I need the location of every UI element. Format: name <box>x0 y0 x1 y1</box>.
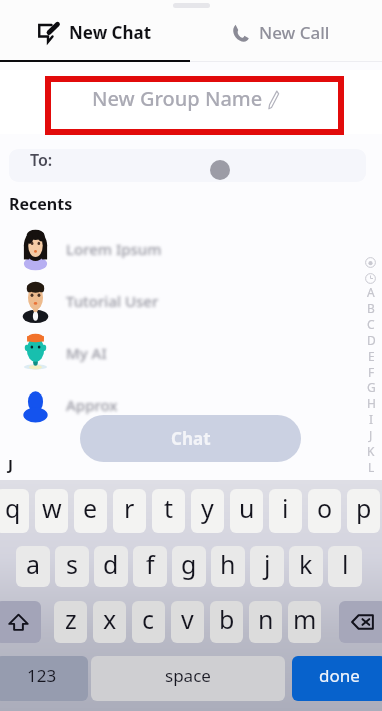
button[interactable]: New Group Name <box>0 70 382 134</box>
staticText: x <box>103 602 117 636</box>
staticText: New Group Name <box>92 85 263 112</box>
staticText: h <box>220 547 236 581</box>
staticText: G <box>367 379 376 395</box>
button[interactable]: q <box>0 489 29 533</box>
staticText: i <box>282 491 289 525</box>
button[interactable]: u <box>230 489 263 533</box>
staticText: My AI <box>66 343 107 363</box>
button[interactable]: z <box>54 601 87 643</box>
staticText: Chat <box>171 427 211 450</box>
staticText: J <box>8 454 13 474</box>
staticText: C <box>367 316 375 332</box>
staticText: s <box>66 547 78 581</box>
button[interactable]: t <box>152 489 185 533</box>
button[interactable]: Approx <box>0 379 382 431</box>
button[interactable]: Backspace <box>339 601 382 643</box>
button[interactable]: done <box>292 656 382 701</box>
button[interactable]: x <box>93 601 126 643</box>
staticText: d <box>103 547 119 581</box>
button[interactable]: Chat <box>80 415 301 462</box>
button[interactable]: b <box>210 601 243 643</box>
staticText: l <box>342 547 349 581</box>
button[interactable]: g <box>172 546 206 587</box>
button[interactable]: w <box>35 489 68 533</box>
staticText: n <box>258 602 274 636</box>
staticText: A <box>367 284 375 300</box>
staticText: w <box>42 491 62 525</box>
button[interactable]: s <box>55 546 89 587</box>
staticText: j <box>264 547 271 581</box>
button[interactable]: f <box>133 546 167 587</box>
staticText: r <box>124 491 135 525</box>
button[interactable]: Lorem Ipsum <box>0 223 382 275</box>
button[interactable]: h <box>211 546 245 587</box>
button[interactable]: d <box>94 546 128 587</box>
button[interactable]: space <box>91 656 285 701</box>
button[interactable]: New Chat <box>0 11 191 62</box>
button[interactable]: r <box>113 489 146 533</box>
button[interactable]: e <box>74 489 107 533</box>
staticText: f <box>146 547 155 581</box>
staticText: K <box>367 443 375 459</box>
staticText: c <box>142 602 155 636</box>
button[interactable]: y <box>191 489 224 533</box>
staticText: To: <box>30 149 53 171</box>
staticText: H <box>367 395 376 411</box>
staticText: z <box>65 602 77 636</box>
button[interactable]: p <box>347 489 380 533</box>
staticText: m <box>293 602 317 636</box>
staticText: D <box>367 332 376 348</box>
staticText: 123 <box>27 664 57 687</box>
button[interactable]: n <box>249 601 282 643</box>
staticText: space <box>165 664 211 687</box>
button[interactable]: m <box>288 601 321 643</box>
staticText: L <box>368 459 375 475</box>
staticText: e <box>83 491 98 525</box>
staticText: F <box>368 364 375 380</box>
staticText: Approx <box>66 395 118 415</box>
staticText: q <box>5 491 21 525</box>
button[interactable]: a <box>16 546 50 587</box>
staticText: E <box>368 348 375 364</box>
staticText: g <box>181 547 197 581</box>
staticText: k <box>299 547 313 581</box>
staticText: u <box>239 491 255 525</box>
staticText: p <box>356 491 372 525</box>
staticText: y <box>201 491 214 525</box>
button[interactable]: l <box>328 546 362 587</box>
button[interactable]: j <box>250 546 284 587</box>
button[interactable]: 123 <box>0 656 88 701</box>
button[interactable]: o <box>308 489 341 533</box>
staticText: done <box>319 664 360 687</box>
button[interactable]: i <box>269 489 302 533</box>
button[interactable]: v <box>171 601 204 643</box>
staticText: o <box>317 491 333 525</box>
button[interactable]: My AI <box>0 327 382 379</box>
staticText: Tutorial User <box>66 291 159 311</box>
staticText: t <box>164 491 174 525</box>
button[interactable]: Tutorial User <box>0 275 382 327</box>
staticText: Recents <box>9 193 73 215</box>
staticText: a <box>26 547 41 581</box>
staticText: J <box>369 427 373 443</box>
button[interactable]: New Call <box>191 11 382 62</box>
staticText: B <box>367 300 375 316</box>
staticText: New Call <box>259 21 330 44</box>
staticText: b <box>219 602 235 636</box>
staticText: v <box>181 602 194 636</box>
staticText: I <box>369 411 374 427</box>
button[interactable]: Shift <box>0 601 41 643</box>
button[interactable]: k <box>289 546 323 587</box>
button[interactable]: c <box>132 601 165 643</box>
staticText: New Chat <box>69 21 152 44</box>
staticText: Lorem Ipsum <box>66 239 162 259</box>
